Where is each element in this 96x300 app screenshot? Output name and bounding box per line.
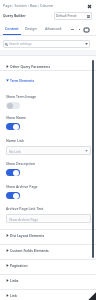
button[interactable]: Search settings <box>3 40 90 48</box>
staticText: Show Description <box>6 161 36 166</box>
button[interactable] <box>0 73 96 88</box>
staticText: Pagination <box>10 263 28 268</box>
staticText: Advanced <box>45 26 62 31</box>
staticText: Links <box>10 278 19 283</box>
staticText: No Link <box>9 149 21 153</box>
button[interactable]: Design <box>22 23 39 35</box>
button[interactable] <box>0 228 96 243</box>
staticText: Show Name <box>6 115 26 120</box>
staticText: Show Archive Page <box>9 217 39 221</box>
button[interactable]: Layout options <box>82 25 91 34</box>
staticText: Archive Page Link Text <box>6 206 44 211</box>
button[interactable] <box>0 273 96 288</box>
staticText: Link <box>10 293 17 298</box>
button[interactable]: Enabled toggle <box>6 169 20 176</box>
button[interactable] <box>0 58 96 73</box>
button[interactable] <box>0 258 96 273</box>
staticText: Design <box>25 26 37 31</box>
button[interactable]: Disabled toggle <box>6 102 20 109</box>
staticText: Divi Layout Elements <box>10 233 45 238</box>
button[interactable]: Advanced <box>43 23 64 35</box>
button[interactable]: Close <box>86 3 93 10</box>
staticText: Name Link <box>6 138 24 143</box>
button[interactable]: No Link <box>6 146 91 155</box>
staticText: Content <box>5 26 19 31</box>
staticText: Custom Fields Elements <box>10 248 49 253</box>
button[interactable]: Enabled toggle <box>6 123 20 130</box>
staticText: Default Preset <box>56 14 77 18</box>
button[interactable] <box>0 288 96 300</box>
staticText: Query Builder <box>3 13 26 17</box>
staticText: Show Archive Page <box>6 184 38 189</box>
button[interactable] <box>0 243 96 258</box>
button[interactable]: Content <box>2 23 21 35</box>
staticText: Other Query Parameters <box>10 64 51 69</box>
button[interactable]: Default Preset <box>54 12 92 20</box>
button[interactable]: Show Archive Page <box>6 214 91 223</box>
staticText: Page › Section › Row › Column <box>3 3 54 8</box>
staticText: Search settings <box>9 42 32 46</box>
staticText: Show Term Image <box>6 94 37 99</box>
staticText: Term Elements <box>10 78 35 83</box>
button[interactable]: Enabled toggle <box>6 192 20 199</box>
